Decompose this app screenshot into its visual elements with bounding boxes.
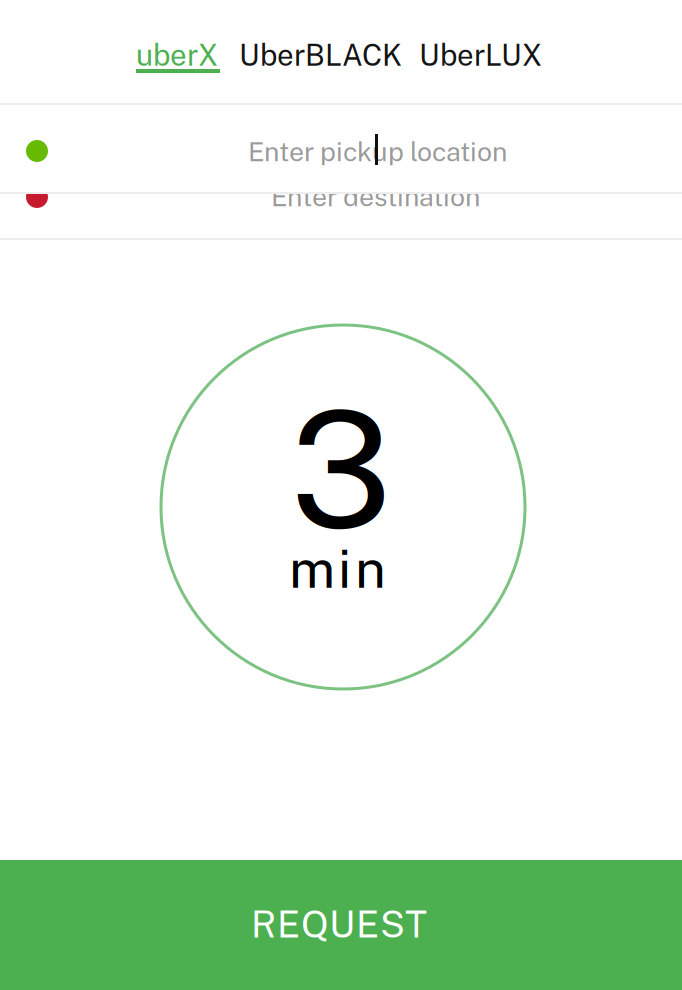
staticText: REQUEST [251,902,427,946]
button[interactable]: Enter pickup location [0,105,682,192]
button[interactable]: UberBLACK [230,34,408,98]
staticText: 3 [290,374,392,564]
staticText: uberX [136,38,218,72]
staticText: UberBLACK [239,38,402,72]
staticText: Enter destination [271,181,480,212]
button[interactable]: REQUEST [0,860,682,990]
button[interactable]: Enter destination [0,192,682,238]
staticText: UberLUX [419,38,542,72]
staticText: Enter pickup location [248,136,507,167]
button[interactable]: UberLUX [410,34,549,98]
button[interactable]: uberX [126,34,227,98]
staticText: min [289,537,386,600]
